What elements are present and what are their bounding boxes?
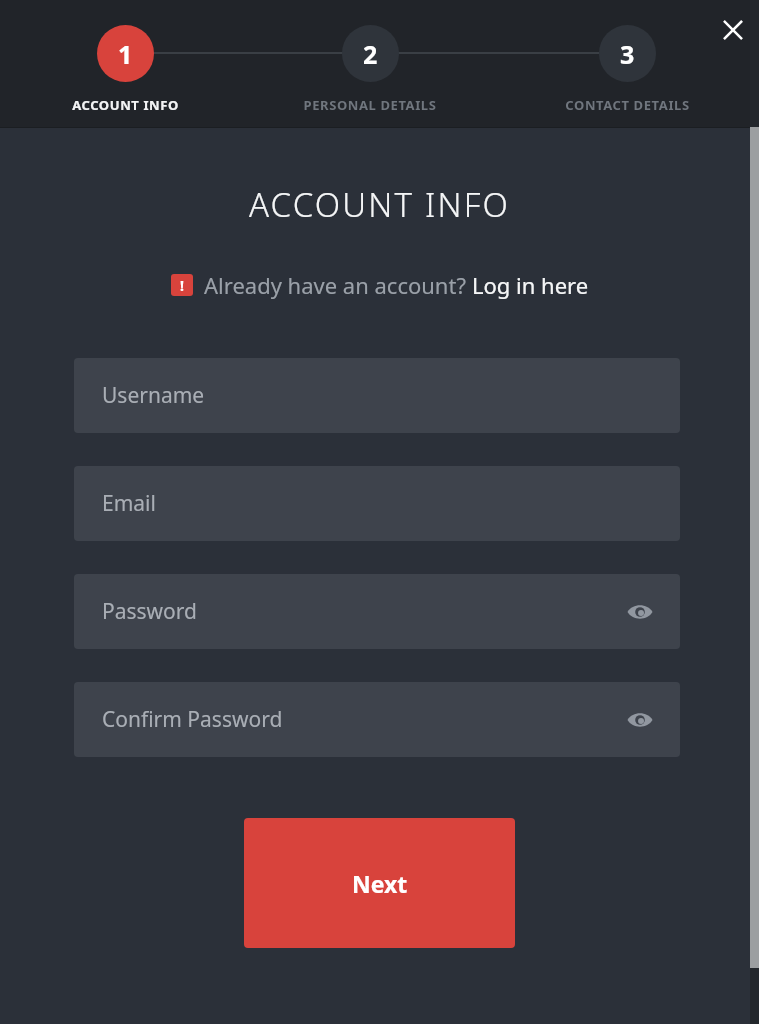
button[interactable]: Username [74, 358, 680, 433]
button[interactable]: Email [74, 466, 680, 541]
button[interactable]: 3 [497, 0, 757, 120]
staticText: Already have an account? [204, 270, 472, 300]
button[interactable]: Show password [620, 592, 660, 632]
staticText: Confirm Password [102, 705, 283, 734]
staticText: 2 [363, 37, 378, 71]
staticText: ! [180, 276, 184, 295]
staticText: PERSONAL DETAILS [303, 96, 437, 114]
button[interactable]: Next [244, 818, 515, 948]
button[interactable]: Log in here [472, 270, 589, 300]
staticText: CONTACT DETAILS [565, 96, 690, 114]
staticText: 3 [620, 37, 635, 71]
button[interactable]: Confirm Password [74, 682, 680, 757]
staticText: Log in here [472, 270, 589, 300]
staticText: Password [102, 597, 197, 626]
button[interactable]: Show password [620, 700, 660, 740]
staticText: ACCOUNT INFO [249, 182, 511, 227]
staticText: 1 [118, 37, 133, 71]
staticText: Next [352, 868, 408, 899]
button[interactable]: 2 [240, 0, 500, 120]
button[interactable]: Password [74, 574, 680, 649]
button[interactable]: Close [707, 4, 759, 56]
button[interactable]: 1 [0, 0, 255, 120]
staticText: ACCOUNT INFO [72, 96, 179, 114]
staticText: Email [102, 489, 156, 518]
staticText: Username [102, 381, 205, 410]
